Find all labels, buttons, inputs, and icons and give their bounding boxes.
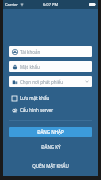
button[interactable]: Chọn nơi phát phiếu bbox=[9, 76, 92, 87]
button[interactable]: ĐĂNG NHẬP bbox=[9, 127, 92, 137]
staticText: Lưu mật khẩu bbox=[20, 95, 50, 101]
button[interactable]: Mật khẩu bbox=[9, 61, 92, 72]
button[interactable]: QUÊN MẬT KHẨU bbox=[3, 162, 98, 170]
staticText: 6:07 PM bbox=[43, 2, 59, 7]
button[interactable]: ĐĂNG KÝ bbox=[3, 143, 98, 151]
button[interactable]: Cấu hình server bbox=[11, 106, 55, 114]
staticText: Tài khoản bbox=[20, 49, 89, 55]
staticText: ĐĂNG KÝ bbox=[41, 144, 61, 150]
button[interactable]: Lưu mật khẩu bbox=[11, 94, 51, 102]
staticText: Carrier bbox=[5, 2, 19, 7]
staticText: QUÊN MẬT KHẨU bbox=[32, 163, 69, 169]
staticText: Mật khẩu bbox=[20, 64, 89, 70]
staticText: Chọn nơi phát phiếu bbox=[20, 79, 85, 85]
staticText: ĐĂNG NHẬP bbox=[37, 129, 64, 135]
staticText: Cấu hình server bbox=[20, 107, 54, 113]
button[interactable]: Tài khoản bbox=[9, 46, 92, 57]
